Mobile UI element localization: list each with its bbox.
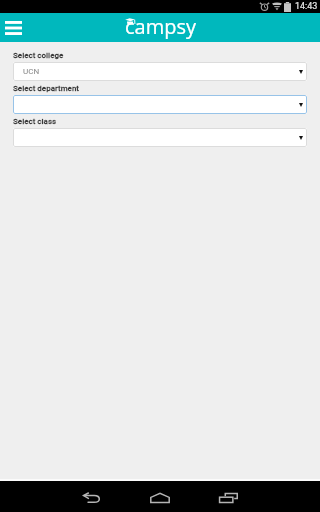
staticText: Select class [13,117,57,126]
staticText: Select college [13,51,64,60]
staticText: 14:43 [295,1,318,12]
button[interactable]: UCN [13,62,307,81]
button[interactable] [13,95,307,114]
staticText: Select department [13,84,80,93]
button[interactable]: Home [139,481,180,512]
button[interactable] [13,128,307,147]
staticText: UCN [23,67,40,76]
button[interactable]: Open navigation menu [1,15,26,40]
staticText: campsy [125,13,196,40]
button[interactable]: Back [72,481,112,512]
button[interactable]: Recent apps [208,481,249,512]
